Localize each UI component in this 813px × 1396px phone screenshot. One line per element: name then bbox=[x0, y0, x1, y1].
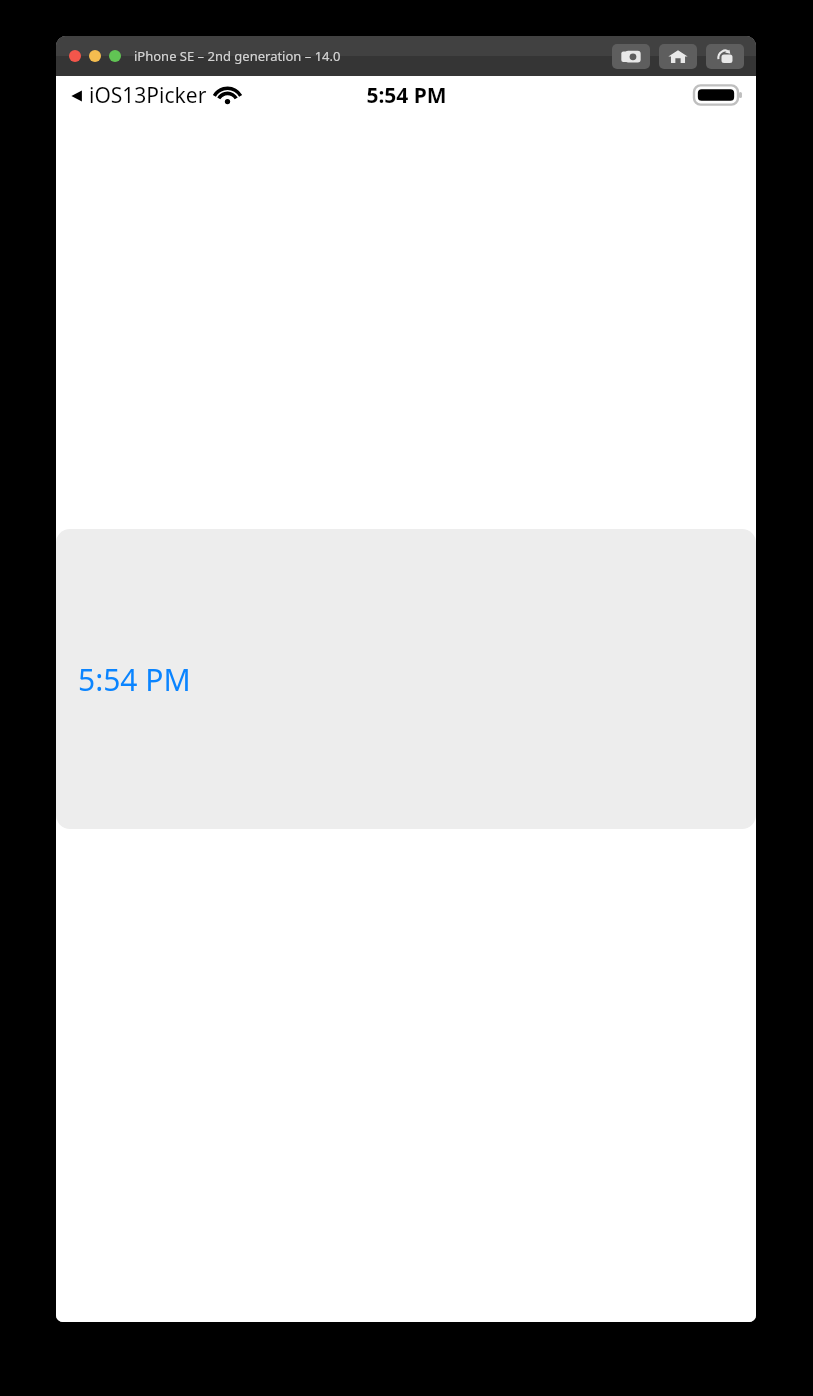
button[interactable]: Minimise bbox=[89, 50, 101, 62]
staticText: iOS13Picker bbox=[89, 81, 207, 110]
button[interactable]: Close bbox=[69, 50, 81, 62]
other: Wi-Fi bbox=[215, 86, 240, 105]
staticText: 5:54 PM bbox=[366, 81, 447, 110]
button[interactable]: Back bbox=[70, 81, 240, 110]
staticText: 5:54 PM bbox=[78, 659, 191, 700]
button[interactable]: Take screenshot bbox=[612, 44, 650, 69]
other: Battery full bbox=[694, 83, 744, 107]
button[interactable]: Home bbox=[659, 44, 697, 69]
button[interactable]: Rotate bbox=[706, 44, 744, 69]
button[interactable]: Zoom bbox=[109, 50, 121, 62]
other: Back bbox=[70, 88, 84, 104]
staticText: iPhone SE – 2nd generation – 14.0 bbox=[134, 47, 341, 65]
button[interactable]: 5:54 PM bbox=[56, 529, 756, 829]
